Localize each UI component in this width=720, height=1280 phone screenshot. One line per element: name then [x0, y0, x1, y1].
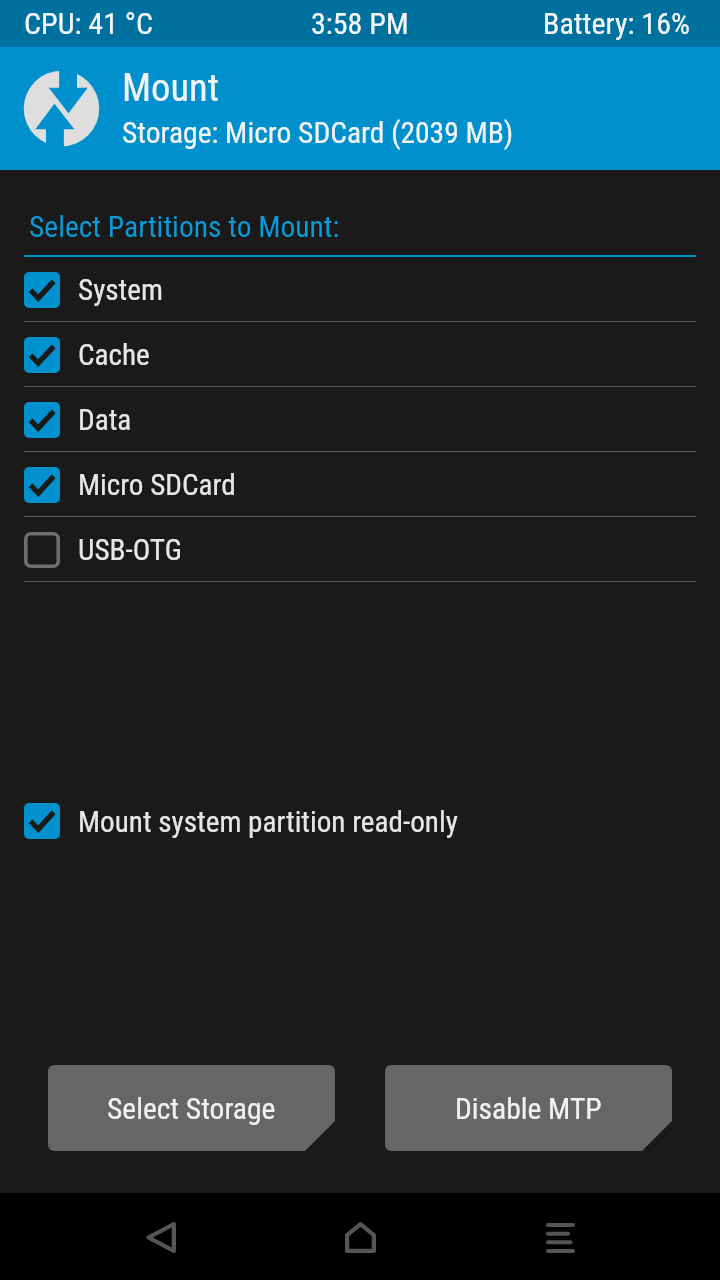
- button[interactable]: Home: [260, 1194, 460, 1280]
- button[interactable]: Menu: [460, 1194, 660, 1280]
- button[interactable]: Micro SDCard: [0, 452, 720, 517]
- staticText: Storage: Micro SDCard (2039 MB): [122, 116, 514, 151]
- button[interactable]: Back: [60, 1194, 260, 1280]
- button[interactable]: System: [0, 257, 720, 322]
- staticText: CPU: 41 °C: [24, 6, 154, 41]
- staticText: Battery: 16%: [543, 6, 690, 41]
- button[interactable]: USB-OTG: [0, 517, 720, 582]
- staticText: Mount: [122, 65, 220, 110]
- button[interactable]: Disable MTP: [385, 1065, 672, 1151]
- button[interactable]: Cache: [0, 322, 720, 387]
- staticText: Select Storage: [107, 1092, 276, 1127]
- button[interactable]: Data: [0, 387, 720, 452]
- staticText: System: [78, 273, 163, 307]
- staticText: 3:58 PM: [311, 6, 409, 41]
- staticText: Select Partitions to Mount:: [29, 210, 340, 245]
- staticText: Mount system partition read-only: [78, 805, 458, 839]
- staticText: Disable MTP: [455, 1092, 602, 1127]
- button[interactable]: Select Storage: [48, 1065, 335, 1151]
- staticText: USB-OTG: [78, 533, 182, 567]
- button[interactable]: Mount system partition read-only: [0, 799, 720, 843]
- staticText: Data: [78, 403, 132, 437]
- staticText: Cache: [78, 338, 150, 372]
- staticText: Micro SDCard: [78, 468, 236, 502]
